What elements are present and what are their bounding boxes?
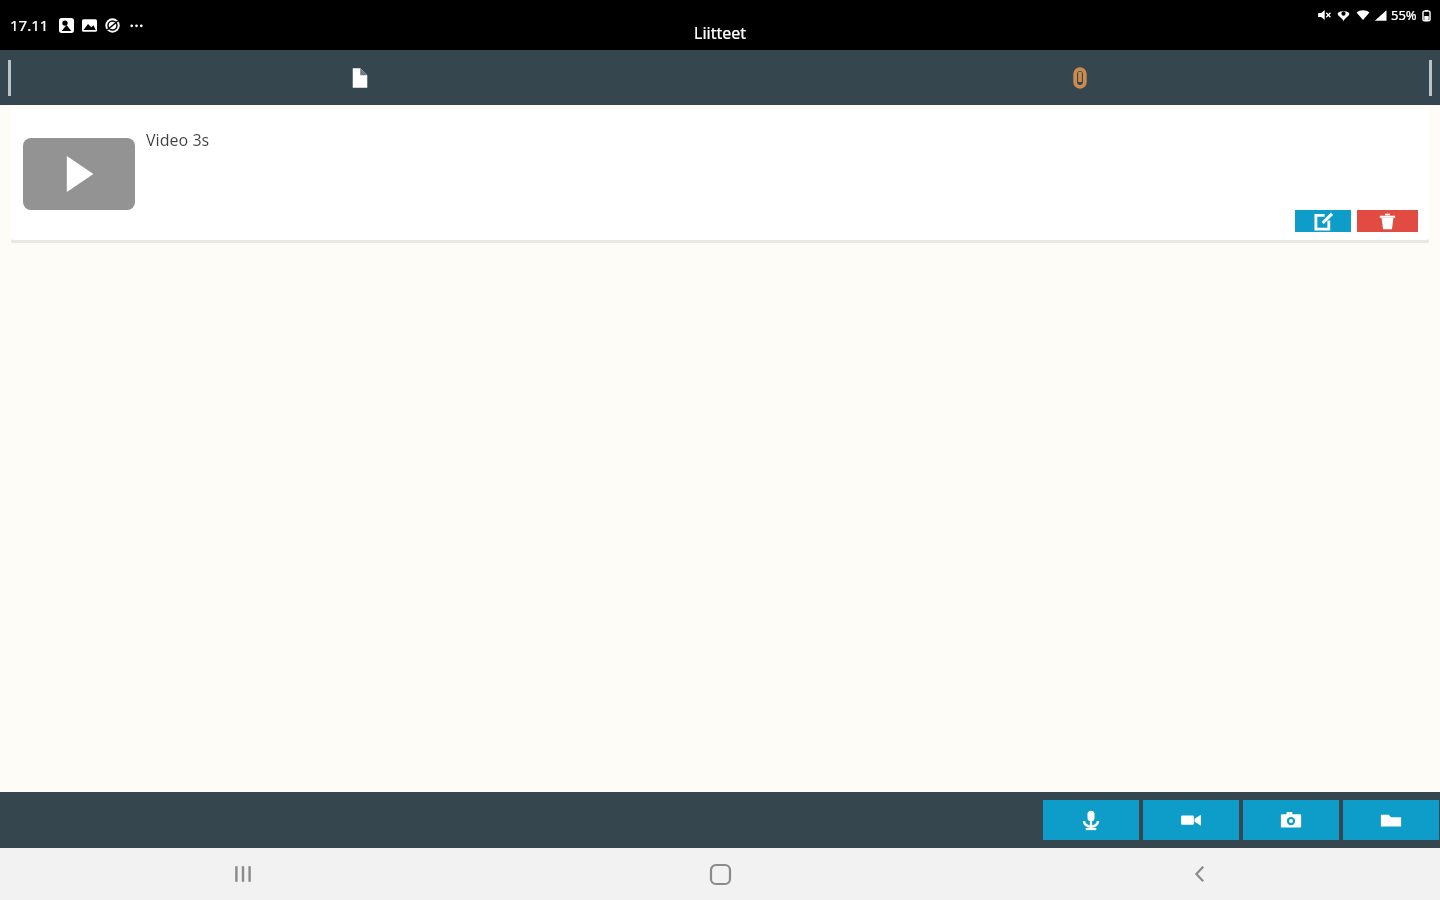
button[interactable]: Record video [1143, 800, 1239, 840]
button[interactable]: Delete [1357, 210, 1418, 232]
button[interactable]: Play video [23, 138, 135, 210]
staticText: Video 3s [146, 129, 210, 151]
staticText: 17.11 [10, 15, 49, 35]
button[interactable]: Edit [1295, 210, 1351, 232]
button[interactable]: Take photo [1243, 800, 1339, 840]
staticText: 55% [1391, 6, 1417, 24]
button[interactable]: Recents [0, 848, 480, 900]
button[interactable]: Home [480, 848, 960, 900]
button[interactable]: Back [960, 848, 1440, 900]
button[interactable]: Record audio [1043, 800, 1139, 840]
button[interactable]: Play video [11, 109, 1429, 240]
button[interactable]: Attachments tab [720, 50, 1440, 105]
button[interactable]: Browse files [1343, 800, 1439, 840]
staticText: Liitteet [694, 22, 747, 44]
button[interactable]: Documents tab [0, 50, 720, 105]
